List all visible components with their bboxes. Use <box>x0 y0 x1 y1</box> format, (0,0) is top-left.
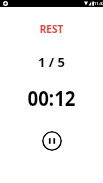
staticText: REST <box>0 22 103 36</box>
staticText: 00:12 <box>6 84 97 113</box>
staticText: 1 / 5 <box>0 53 103 71</box>
staticText: 11:32 <box>94 1 103 7</box>
button[interactable]: Pause <box>42 131 62 151</box>
